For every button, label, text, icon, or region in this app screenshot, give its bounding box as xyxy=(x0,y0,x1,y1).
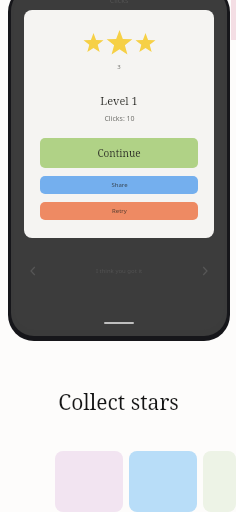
button[interactable]: Next xyxy=(196,262,214,280)
button[interactable] xyxy=(203,451,236,512)
button[interactable] xyxy=(129,451,197,512)
button[interactable]: Continue xyxy=(40,138,198,168)
button[interactable]: Previous xyxy=(24,262,42,280)
staticText: Level 1 xyxy=(100,93,138,108)
staticText: Share xyxy=(111,181,128,189)
staticText: Clicks: 10 xyxy=(104,114,135,124)
button[interactable]: Share xyxy=(40,176,198,194)
staticText: Retry xyxy=(112,207,127,215)
staticText: 3 xyxy=(117,63,121,71)
staticText: Continue xyxy=(97,146,141,160)
button[interactable]: Retry xyxy=(40,202,198,220)
staticText: Collect stars xyxy=(58,388,179,417)
